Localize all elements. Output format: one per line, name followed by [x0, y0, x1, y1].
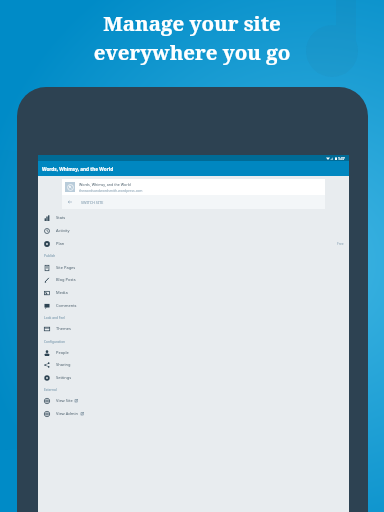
- staticText: Configuration: [44, 340, 66, 344]
- staticText: Look and Feel: [44, 316, 66, 320]
- staticText: thewordsandwordsmith.wordpress.com: [79, 188, 143, 193]
- button[interactable]: Sharing: [38, 358, 349, 371]
- staticText: View Admin: [56, 411, 79, 416]
- staticText: Words, Whimsy, and the World: [42, 166, 114, 172]
- staticText: Comments: [56, 303, 77, 308]
- button[interactable]: Comments: [38, 299, 349, 312]
- staticText: View Site: [56, 398, 73, 403]
- staticText: Manage your site everywhere you go: [0, 9, 384, 66]
- button[interactable]: Activity: [38, 224, 349, 237]
- staticText: Activity: [56, 228, 70, 233]
- staticText: 1:37: [338, 156, 345, 160]
- staticText: External: [44, 388, 57, 392]
- staticText: SWITCH SITE: [81, 200, 104, 205]
- staticText: Media: [56, 290, 68, 295]
- button[interactable]: View Admin: [38, 407, 349, 420]
- button[interactable]: Stats: [38, 211, 349, 224]
- button[interactable]: Words, Whimsy, and the World: [38, 161, 349, 176]
- staticText: Themes: [56, 326, 71, 331]
- staticText: People: [56, 350, 69, 355]
- staticText: Site Pages: [56, 265, 76, 270]
- staticText: Free: [337, 242, 344, 246]
- button[interactable]: People: [38, 346, 349, 359]
- staticText: Publish: [44, 254, 56, 258]
- button[interactable]: Words, Whimsy, and the World: [62, 179, 325, 195]
- staticText: Blog Posts: [56, 277, 76, 282]
- staticText: Stats: [56, 215, 66, 220]
- staticText: Plan: [56, 241, 65, 246]
- button[interactable]: Settings: [38, 371, 349, 384]
- button[interactable]: Back: [62, 195, 325, 209]
- button[interactable]: Plan: [38, 237, 349, 250]
- button[interactable]: View Site: [38, 394, 349, 407]
- staticText: Sharing: [56, 362, 71, 367]
- staticText: Words, Whimsy, and the World: [79, 182, 131, 187]
- button[interactable]: Media: [38, 286, 349, 299]
- button[interactable]: Site Pages: [38, 261, 349, 274]
- button[interactable]: Blog Posts: [38, 273, 349, 286]
- staticText: Settings: [56, 375, 72, 380]
- button[interactable]: Themes: [38, 322, 349, 335]
- other: Back: [68, 200, 72, 204]
